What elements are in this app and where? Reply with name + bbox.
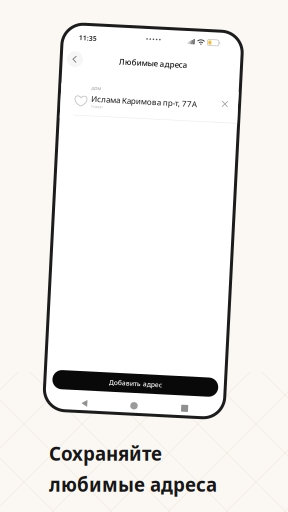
staticText: Ислама Каримова пр-т, 77А (85, 96, 191, 107)
button[interactable]: Back (58, 54, 76, 72)
staticText: Навои (86, 106, 97, 112)
button[interactable]: Back (87, 399, 101, 413)
staticText: Любимые адреса (111, 58, 180, 68)
button[interactable]: Добавить адрес (61, 374, 227, 393)
button[interactable]: дом (55, 87, 232, 122)
staticText: любимые адреса (49, 472, 217, 497)
staticText: дом (85, 87, 95, 94)
staticText: Добавить адрес (117, 379, 170, 388)
staticText: Сохраняйте (49, 441, 162, 466)
staticText: 11:35 (70, 37, 88, 45)
button[interactable]: Recent apps (187, 399, 201, 413)
button[interactable]: Home (136, 399, 150, 413)
